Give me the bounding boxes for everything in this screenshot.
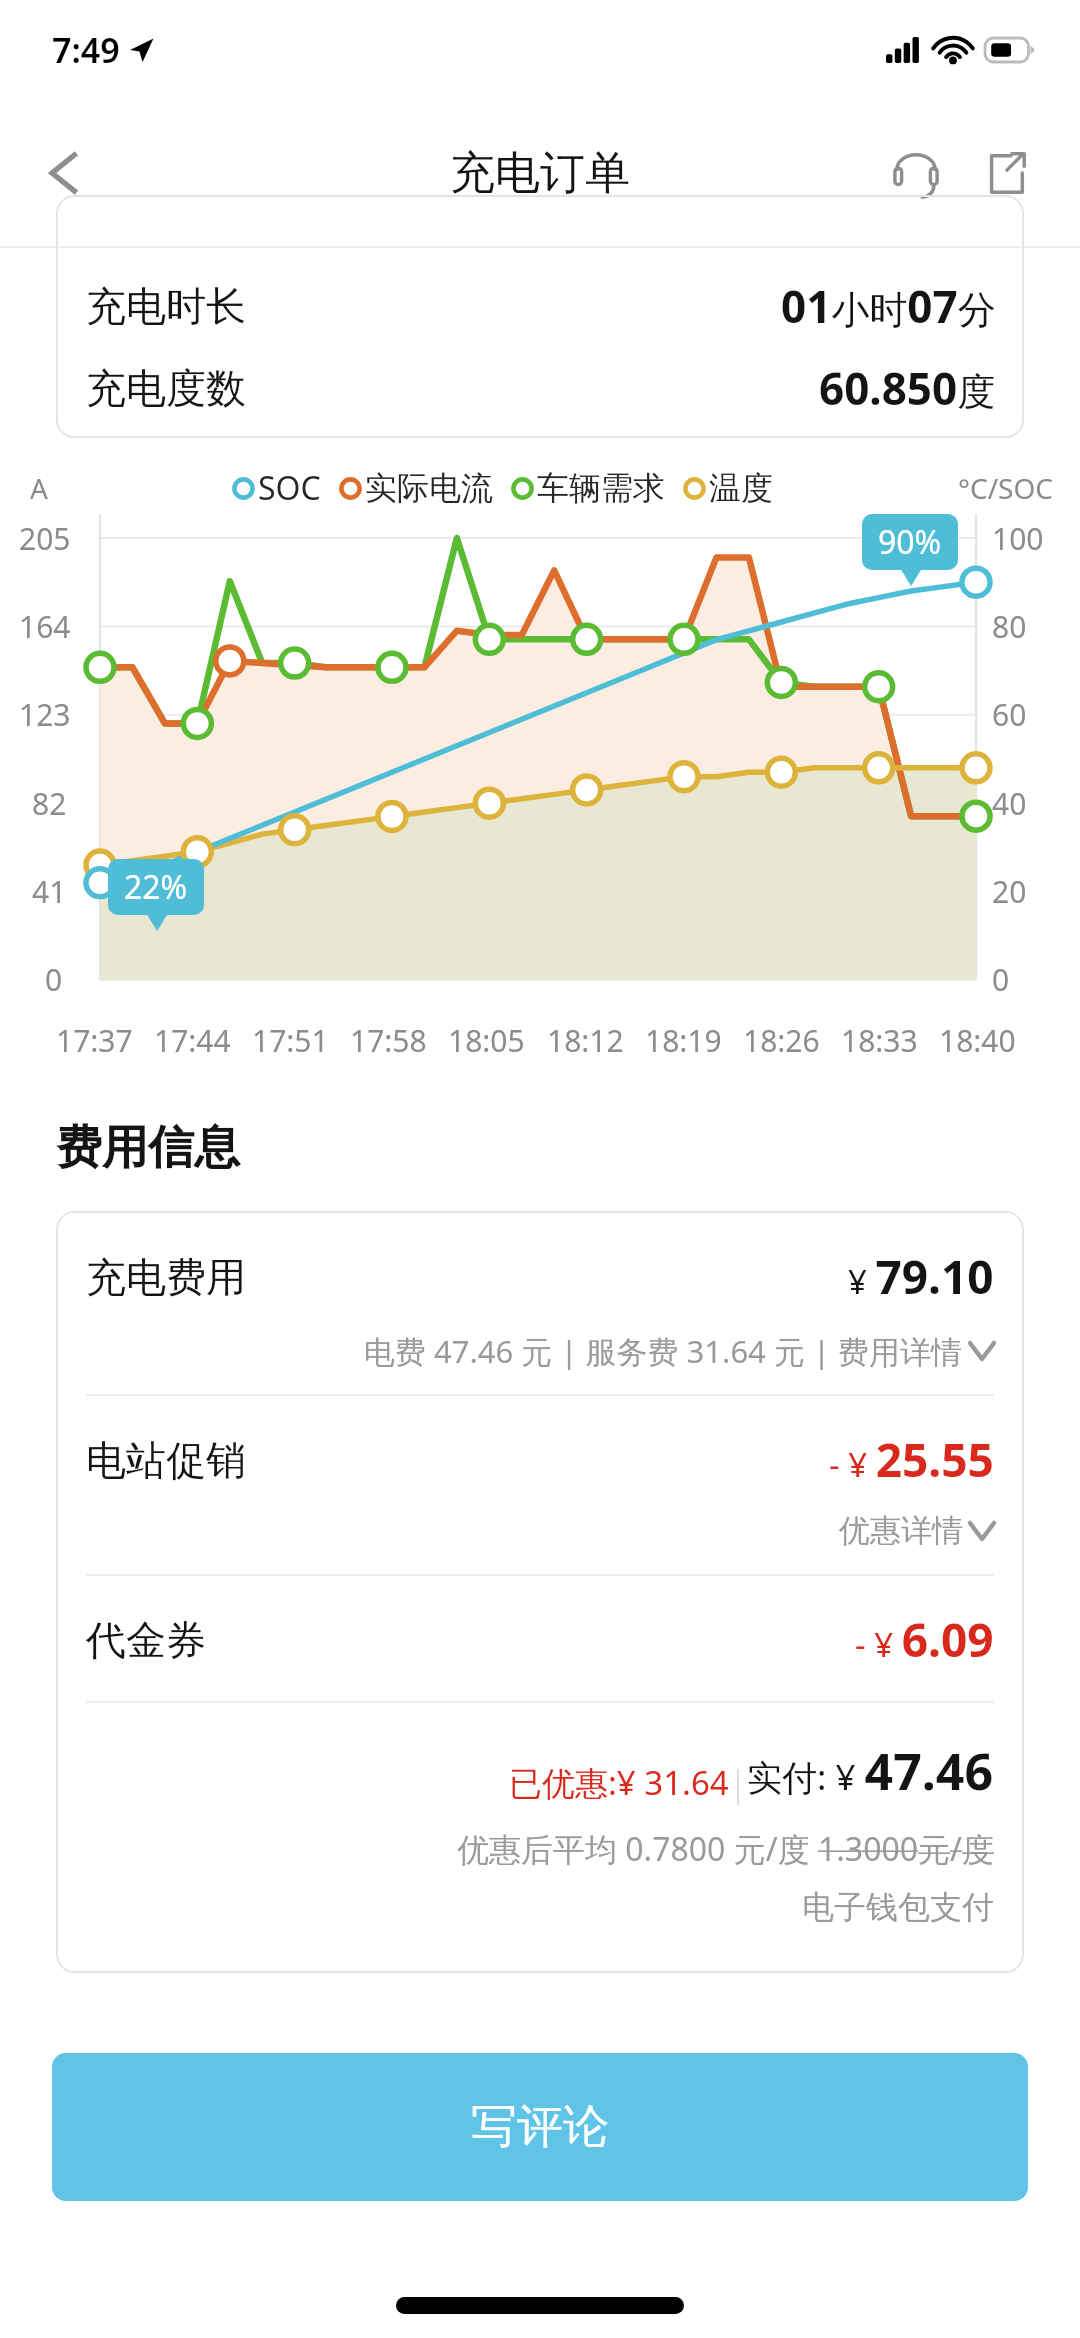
staticText: 电费 47.46 元 | 服务费 31.64 元 | 费用详情 [364, 1330, 963, 1372]
staticText: 60 [992, 694, 1027, 735]
staticText: 实际电流 [365, 468, 493, 508]
staticText: 20 [992, 871, 1027, 912]
staticText: 82 [32, 783, 67, 824]
staticText: ¥ 79.10 [848, 1245, 994, 1308]
button[interactable]: Back [22, 130, 108, 216]
staticText: 90% [878, 520, 942, 564]
staticText: SOC [258, 466, 321, 510]
staticText: 电站促销 [86, 1435, 246, 1485]
staticText: 17:44 [154, 1020, 231, 1061]
staticText: 0 [992, 959, 1010, 1000]
staticText: 实付: ¥ 47.46 [747, 1737, 994, 1805]
staticText: 205 [19, 518, 71, 559]
staticText: 18:33 [841, 1020, 918, 1061]
staticText: 17:51 [252, 1020, 329, 1061]
button[interactable]: Share [966, 133, 1046, 213]
staticText: 01小时07分 [781, 276, 996, 336]
staticText: - ¥ 25.55 [829, 1428, 994, 1491]
staticText: 费用信息 [56, 1119, 240, 1177]
staticText: 80 [992, 606, 1027, 647]
staticText: A [30, 469, 48, 507]
staticText: 60.850度 [819, 358, 996, 418]
staticText: 温度 [709, 468, 773, 508]
staticText: 22% [124, 865, 188, 909]
staticText: 充电订单 [450, 145, 630, 202]
staticText: °C/SOC [958, 469, 1054, 507]
staticText: 电子钱包支付 [802, 1887, 994, 1927]
staticText: 17:58 [350, 1020, 427, 1061]
button[interactable]: 充电费用 [86, 1245, 994, 1308]
staticText: 充电时长 [86, 281, 246, 331]
staticText: 164 [19, 606, 71, 647]
staticText: 写评论 [471, 2098, 609, 2156]
button[interactable]: 电费 47.46 元 | 服务费 31.64 元 | 费用详情 [86, 1330, 994, 1372]
staticText: 18:26 [743, 1020, 820, 1061]
staticText: 100 [992, 518, 1044, 559]
staticText: 40 [992, 783, 1027, 824]
staticText: 已优惠:¥ 31.64 [509, 1760, 729, 1805]
staticText: 17:37 [56, 1020, 133, 1061]
staticText: 18:05 [448, 1020, 525, 1061]
staticText: 充电费用 [86, 1252, 246, 1302]
staticText: 41 [32, 871, 67, 912]
staticText: 充电度数 [86, 363, 246, 413]
staticText: 车辆需求 [537, 468, 665, 508]
staticText: 7:49 [52, 27, 120, 73]
staticText: 代金券 [86, 1615, 206, 1665]
staticText: 18:19 [645, 1020, 722, 1061]
staticText: - ¥ 6.09 [855, 1608, 994, 1671]
staticText: 优惠后平均 0.7800 元/度 1.3000元/度 [457, 1827, 994, 1871]
staticText: 123 [19, 694, 71, 735]
button[interactable]: 写评论 [52, 2053, 1028, 2201]
staticText: 18:12 [547, 1020, 624, 1061]
staticText: 0 [45, 959, 63, 1000]
button[interactable]: 优惠详情 [86, 1511, 994, 1550]
staticText: 优惠详情 [839, 1511, 963, 1550]
button[interactable]: Customer service [876, 133, 956, 213]
staticText: 18:40 [939, 1020, 1016, 1061]
